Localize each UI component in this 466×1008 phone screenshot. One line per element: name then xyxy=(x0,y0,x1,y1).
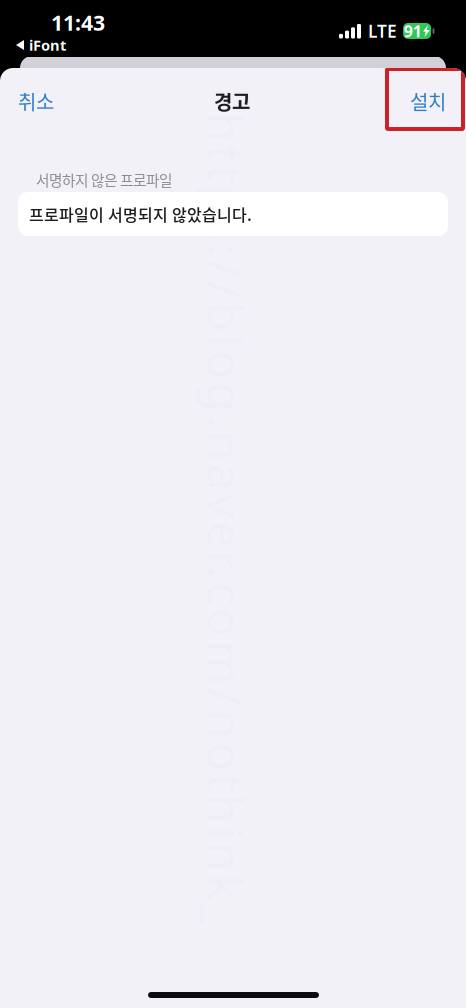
staticText: 설치 xyxy=(410,86,446,115)
staticText: 11:43 xyxy=(51,8,105,37)
staticText: 프로파일이 서명되지 않았습니다. xyxy=(29,202,252,226)
staticText: 경고 xyxy=(214,86,250,115)
staticText: 취소 xyxy=(18,86,54,115)
staticText: iFont xyxy=(29,35,66,55)
button[interactable]: 설치 xyxy=(396,73,466,129)
staticText: 91 xyxy=(404,20,422,42)
staticText: LTE xyxy=(368,19,397,42)
button[interactable]: iFont xyxy=(0,35,78,55)
button[interactable]: 취소 xyxy=(0,73,68,129)
staticText: 서명하지 않은 프로파일 xyxy=(36,169,172,190)
